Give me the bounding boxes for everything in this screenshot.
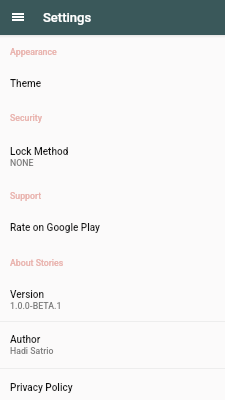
- button[interactable]: Theme: [0, 67, 225, 102]
- staticText: Support: [10, 191, 42, 201]
- button[interactable]: Author: [0, 322, 225, 368]
- staticText: Lock Method: [10, 146, 69, 158]
- button[interactable]: Open navigation menu: [6, 6, 30, 30]
- staticText: 1.0.0-BETA.1: [10, 301, 62, 311]
- button[interactable]: Rate on Google Play: [0, 211, 225, 247]
- staticText: Settings: [43, 10, 92, 25]
- staticText: Security: [10, 113, 42, 123]
- staticText: Privacy Policy: [10, 382, 73, 394]
- staticText: Version: [10, 289, 45, 301]
- staticText: Author: [10, 334, 41, 346]
- staticText: Appearance: [10, 47, 57, 57]
- staticText: Rate on Google Play: [10, 222, 100, 234]
- button[interactable]: Version: [0, 278, 225, 321]
- button[interactable]: Lock Method: [0, 134, 225, 178]
- staticText: About Stories: [10, 258, 64, 268]
- staticText: Theme: [10, 78, 42, 90]
- button[interactable]: Privacy Policy: [0, 369, 225, 400]
- staticText: Hadi Satrio: [10, 346, 54, 356]
- staticText: NONE: [10, 158, 34, 168]
